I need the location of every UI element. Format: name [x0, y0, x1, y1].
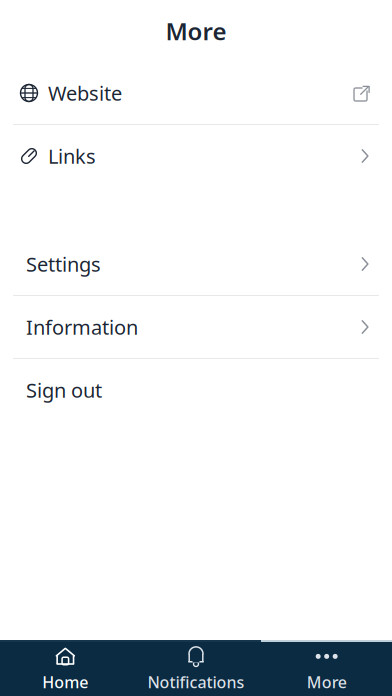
button[interactable]: Links: [0, 125, 392, 187]
staticText: Sign out: [26, 377, 102, 403]
button[interactable]: Sign out: [0, 359, 392, 421]
button[interactable]: Home: [0, 641, 131, 696]
staticText: Information: [26, 314, 138, 340]
staticText: More: [165, 15, 226, 47]
button[interactable]: Information: [0, 296, 392, 358]
button[interactable]: Website: [0, 62, 392, 124]
staticText: Settings: [26, 251, 101, 277]
staticText: Website: [48, 80, 122, 106]
button[interactable]: Notifications: [131, 641, 261, 696]
staticText: Notifications: [147, 671, 244, 693]
button[interactable]: More: [261, 641, 392, 696]
staticText: More: [307, 671, 347, 693]
staticText: Links: [48, 143, 96, 169]
button[interactable]: Settings: [0, 233, 392, 295]
staticText: Home: [42, 671, 88, 693]
